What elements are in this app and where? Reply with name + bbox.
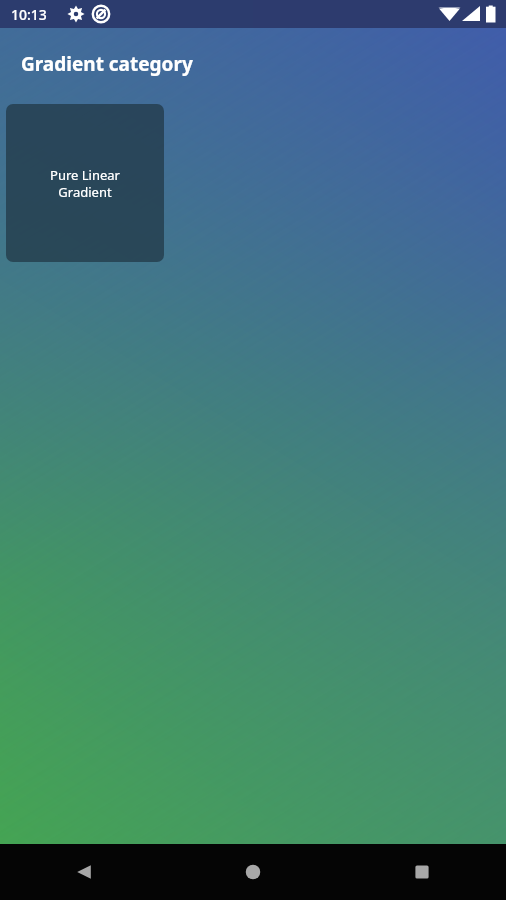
staticText: Gradient category [21, 51, 193, 77]
staticText: 10:13 [11, 5, 47, 24]
button[interactable]: Back [0, 844, 168, 900]
button[interactable]: Home [168, 844, 337, 900]
button[interactable]: Pure Linear Gradient [6, 104, 164, 262]
button[interactable]: Recent apps [337, 844, 506, 900]
staticText: Pure Linear Gradient [50, 166, 120, 201]
